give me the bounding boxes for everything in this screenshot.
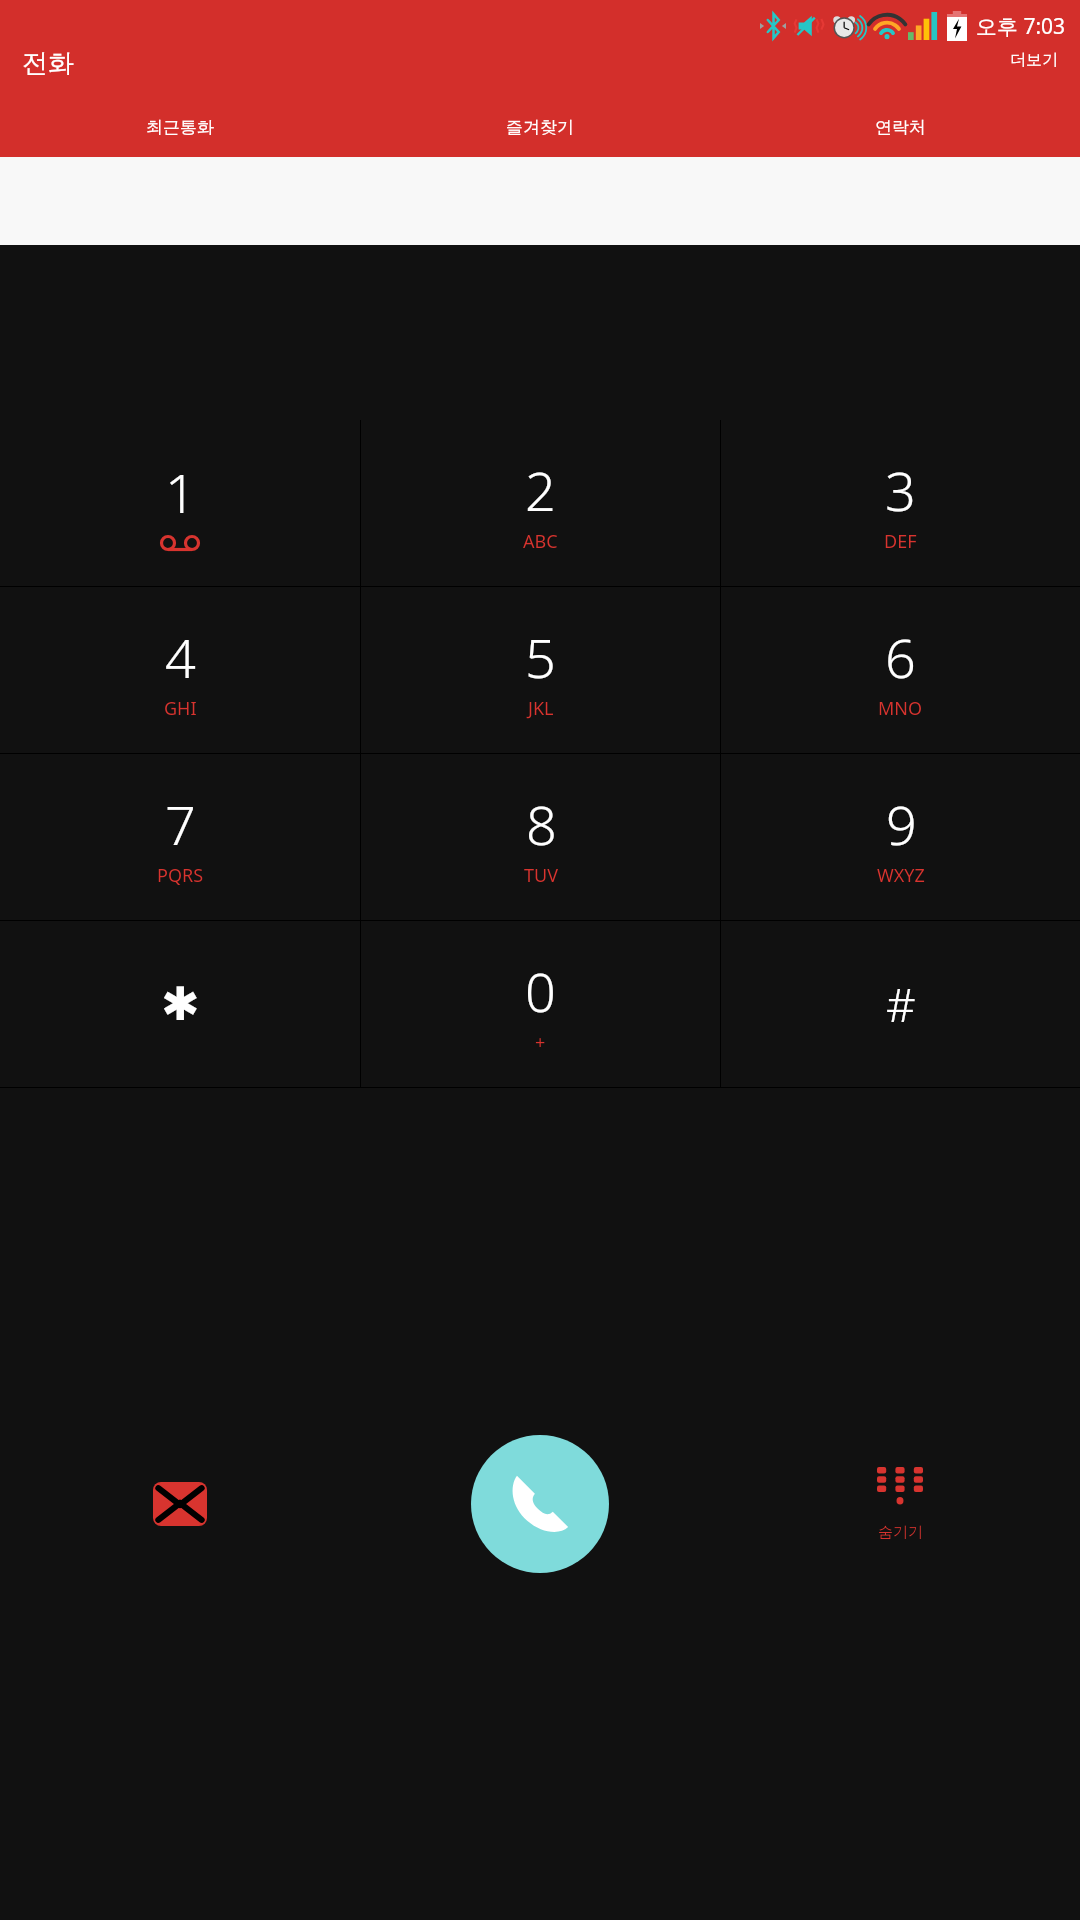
staticText: 7	[165, 787, 196, 861]
button[interactable]: 3	[721, 420, 1080, 586]
staticText: 0	[525, 954, 556, 1028]
button[interactable]: 0	[361, 921, 720, 1087]
staticText: 숨기기	[878, 1523, 923, 1542]
staticText: #	[886, 973, 916, 1036]
staticText: 8	[526, 787, 557, 861]
button[interactable]: ✱	[0, 921, 360, 1087]
staticText: 2	[525, 453, 556, 527]
staticText: ✱	[161, 977, 200, 1031]
button[interactable]: 6	[721, 587, 1080, 753]
staticText: 4	[165, 620, 196, 694]
staticText: ABC	[523, 529, 558, 554]
button[interactable]: 최근통화	[0, 97, 360, 157]
staticText: PQRS	[157, 863, 204, 888]
button[interactable]: 4	[0, 587, 360, 753]
button[interactable]: 숨기기	[720, 1088, 1080, 1920]
staticText: WXYZ	[877, 863, 925, 888]
button[interactable]: 더보기	[998, 44, 1070, 76]
button[interactable]: Send message	[0, 1088, 360, 1920]
button[interactable]: 9	[721, 754, 1080, 920]
staticText: MNO	[878, 696, 923, 721]
button[interactable]: #	[721, 921, 1080, 1087]
staticText: DEF	[884, 529, 917, 554]
button[interactable]: 7	[0, 754, 360, 920]
button[interactable]: Call	[471, 1435, 609, 1573]
button[interactable]: 연락처	[720, 97, 1080, 157]
staticText: 3	[885, 453, 916, 527]
staticText: 오후 7:03	[976, 12, 1066, 41]
button[interactable]: 즐겨찾기	[360, 97, 720, 157]
button[interactable]: 8	[361, 754, 720, 920]
staticText: 연락처	[875, 117, 926, 138]
staticText: JKL	[528, 696, 554, 721]
staticText: 더보기	[1010, 50, 1058, 70]
button[interactable]: 2	[361, 420, 720, 586]
button[interactable]: 1	[0, 420, 360, 586]
staticText: 5	[525, 620, 556, 694]
staticText: 1	[165, 455, 196, 529]
staticText: GHI	[164, 696, 197, 721]
staticText: TUV	[524, 863, 558, 888]
staticText: +	[535, 1030, 546, 1055]
button[interactable]: 5	[361, 587, 720, 753]
staticText: 전화	[22, 47, 74, 80]
staticText: 9	[886, 787, 917, 861]
staticText: 최근통화	[146, 117, 214, 138]
staticText: 즐겨찾기	[506, 117, 574, 138]
staticText: 6	[885, 620, 916, 694]
